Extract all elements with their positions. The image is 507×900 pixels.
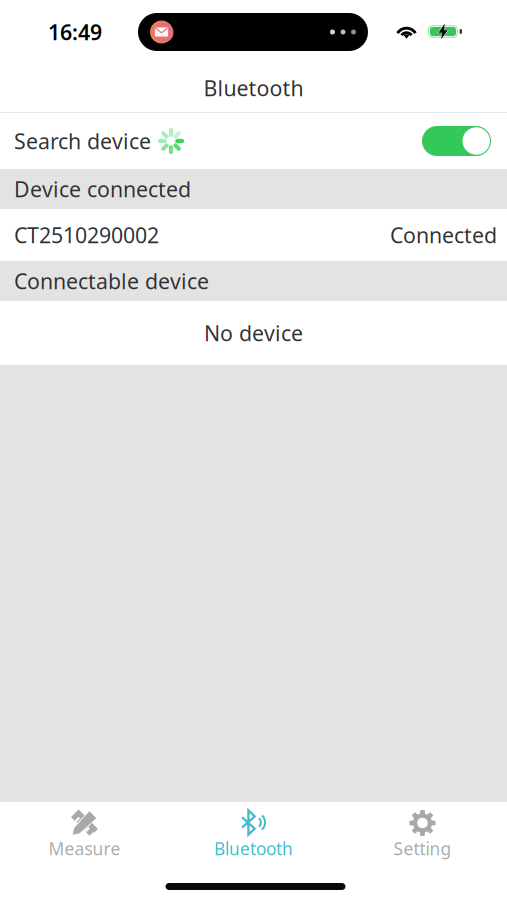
button[interactable]: Bluetooth: [169, 802, 338, 900]
button[interactable]: Search device: [0, 113, 507, 169]
staticText: Measure: [48, 837, 120, 860]
staticText: Connectable device: [14, 267, 209, 295]
staticText: Device connected: [14, 175, 191, 203]
staticText: 16:49: [48, 18, 102, 46]
staticText: Bluetooth: [214, 837, 293, 860]
button[interactable]: CT2510290002: [0, 209, 507, 261]
staticText: Setting: [393, 837, 451, 860]
button[interactable]: Setting: [338, 802, 507, 900]
button[interactable]: Measure: [0, 802, 169, 900]
staticText: Bluetooth: [203, 74, 303, 102]
staticText: CT2510290002: [14, 221, 159, 249]
staticText: Search device: [14, 127, 151, 155]
staticText: Connected: [390, 221, 497, 249]
staticText: No device: [204, 319, 303, 347]
